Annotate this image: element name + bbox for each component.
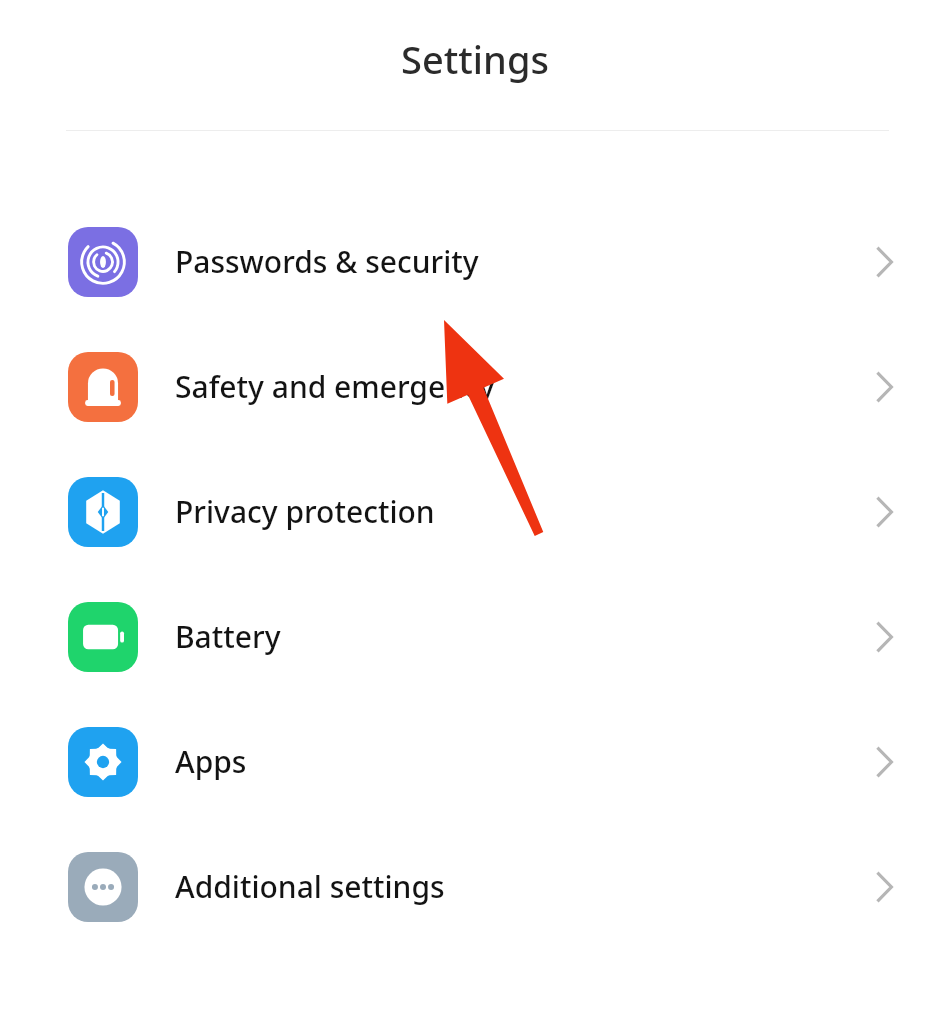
button[interactable]: Apps: [0, 699, 949, 824]
other: Open: [871, 615, 901, 659]
staticText: Passwords & security: [175, 241, 871, 282]
button[interactable]: Battery: [0, 574, 949, 699]
other: Open: [871, 490, 901, 534]
staticText: Apps: [175, 741, 871, 782]
staticText: Privacy protection: [175, 491, 871, 532]
other: Open: [871, 365, 901, 409]
other: Open: [871, 240, 901, 284]
button[interactable]: Privacy protection: [0, 449, 949, 574]
button[interactable]: Additional settings: [0, 824, 949, 949]
button[interactable]: Passwords & security: [0, 199, 949, 324]
other: Open: [871, 740, 901, 784]
staticText: Settings: [401, 33, 549, 85]
staticText: Battery: [175, 616, 871, 657]
staticText: Safety and emergency: [175, 366, 871, 407]
button[interactable]: Safety and emergency: [0, 324, 949, 449]
staticText: Additional settings: [175, 866, 871, 907]
other: Open: [871, 865, 901, 909]
